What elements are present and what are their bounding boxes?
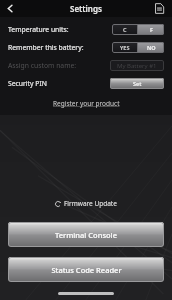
staticText: Status Code Reader bbox=[51, 265, 122, 275]
staticText: Temperature units: bbox=[8, 25, 112, 34]
button[interactable]: Firmware Update bbox=[0, 199, 172, 208]
button[interactable]: C bbox=[112, 24, 137, 35]
button[interactable]: NO bbox=[138, 42, 164, 53]
staticText: Firmware Update bbox=[64, 199, 117, 208]
staticText: Assign custom name: bbox=[8, 61, 110, 70]
staticText: Remember this battery: bbox=[8, 43, 112, 52]
button[interactable]: Terminal Console bbox=[8, 222, 164, 247]
button[interactable]: Back bbox=[0, 0, 20, 17]
staticText: My Battery #1 bbox=[117, 62, 157, 70]
staticText: NO bbox=[147, 44, 156, 51]
button[interactable]: Set bbox=[110, 78, 164, 89]
staticText: C bbox=[123, 26, 127, 33]
button[interactable]: My Battery #1 bbox=[110, 60, 164, 71]
button[interactable]: Log bbox=[150, 0, 168, 17]
staticText: Terminal Console bbox=[55, 230, 117, 240]
button[interactable]: Register your product bbox=[51, 97, 122, 110]
staticText: Register your product bbox=[53, 99, 120, 108]
button[interactable]: YES bbox=[112, 42, 137, 53]
staticText: Settings bbox=[70, 3, 102, 14]
staticText: Set bbox=[133, 80, 142, 87]
staticText: Security PIN bbox=[8, 79, 110, 88]
button[interactable]: F bbox=[138, 24, 164, 35]
staticText: YES bbox=[120, 44, 130, 51]
staticText: F bbox=[150, 26, 153, 33]
button[interactable]: Status Code Reader bbox=[8, 257, 164, 282]
